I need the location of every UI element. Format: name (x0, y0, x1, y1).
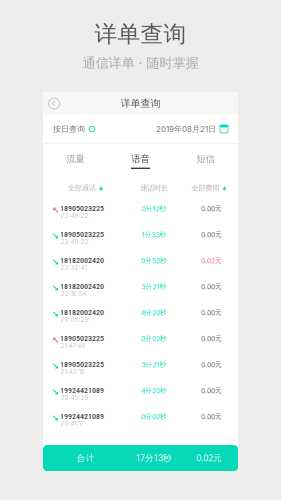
button[interactable]: 18905023225 (43, 200, 238, 226)
staticText: 18905023225 (60, 334, 104, 343)
button[interactable]: 19924421089 (43, 382, 238, 408)
staticText: 18905023225 (60, 360, 104, 369)
staticText: 0.00元 (201, 386, 222, 395)
staticText: 18182002420 (60, 308, 104, 317)
staticText: 22:32:41 (60, 264, 86, 271)
staticText: 3分21秒 (141, 282, 166, 291)
staticText: 19924421089 (60, 412, 104, 421)
button[interactable]: 通话时长 (128, 176, 180, 200)
button[interactable]: 18905023225 (43, 330, 238, 356)
staticText: 详单查询 (94, 20, 186, 49)
staticText: 0.00元 (201, 230, 222, 239)
staticText: 17分13秒 (136, 452, 172, 463)
staticText: 18905023225 (60, 230, 104, 239)
button[interactable]: 按日查询 (43, 120, 94, 138)
staticText: 23:49:02 (60, 238, 88, 245)
staticText: 0.00元 (201, 282, 222, 291)
button[interactable]: 全部通话 (43, 176, 128, 200)
button[interactable]: 2019年08月21日 (156, 120, 238, 138)
staticText: 2019年08月21日 (156, 124, 216, 134)
staticText: 20:41:17 (60, 420, 83, 427)
staticText: 4分20秒 (141, 386, 167, 395)
staticText: 21:47:46 (60, 342, 85, 349)
staticText: 1分33秒 (141, 230, 166, 239)
button[interactable]: 18182002420 (43, 278, 238, 304)
staticText: 全部费用 (191, 183, 219, 193)
staticText: 0分02秒 (141, 412, 167, 421)
staticText: 22:05:29 (60, 316, 88, 323)
staticText: 23:49:22 (60, 212, 88, 219)
staticText: 18182002420 (60, 282, 104, 291)
button[interactable]: 合计 (43, 445, 238, 471)
button[interactable]: Back (44, 93, 64, 113)
staticText: 0.00元 (201, 334, 222, 343)
staticText: 全部通话 (68, 183, 96, 193)
staticText: 流量 (66, 153, 84, 165)
staticText: 0分12秒 (141, 204, 166, 213)
button[interactable]: 18905023225 (43, 356, 238, 382)
button[interactable]: 19924421089 (43, 408, 238, 434)
staticText: 20:45:29 (60, 394, 88, 401)
staticText: 按日查询 (53, 124, 85, 134)
staticText: 18182002420 (60, 256, 104, 265)
staticText: 0分52秒 (141, 256, 167, 265)
staticText: 22:18:54 (60, 290, 86, 297)
button[interactable]: 全部费用 (180, 176, 238, 200)
button[interactable]: 短信 (173, 144, 238, 176)
button[interactable]: 18182002420 (43, 252, 238, 278)
staticText: 详单查询 (120, 97, 160, 110)
staticText: 4分20秒 (141, 308, 167, 317)
button[interactable]: 流量 (43, 144, 108, 176)
staticText: 19924421089 (60, 386, 104, 395)
staticText: 合计 (76, 452, 94, 463)
staticText: 18905023225 (60, 204, 104, 213)
staticText: 0.02元 (196, 452, 222, 463)
staticText: 0.00元 (201, 204, 222, 213)
staticText: 0.00元 (201, 412, 222, 421)
button[interactable]: 18905023225 (43, 226, 238, 252)
button[interactable]: 18182002420 (43, 304, 238, 330)
staticText: 0分02秒 (141, 334, 167, 343)
staticText: 语音 (131, 153, 149, 165)
staticText: 0.00元 (201, 360, 222, 369)
staticText: 21:42:18 (60, 368, 84, 375)
staticText: 0.00元 (201, 308, 222, 317)
button[interactable]: 语音 (108, 144, 173, 176)
staticText: 3分21秒 (141, 360, 166, 369)
staticText: 短信 (196, 153, 214, 165)
staticText: 0.02元 (201, 256, 222, 265)
staticText: 通信详单 · 随时掌握 (82, 55, 198, 71)
staticText: 通话时长 (140, 183, 168, 193)
